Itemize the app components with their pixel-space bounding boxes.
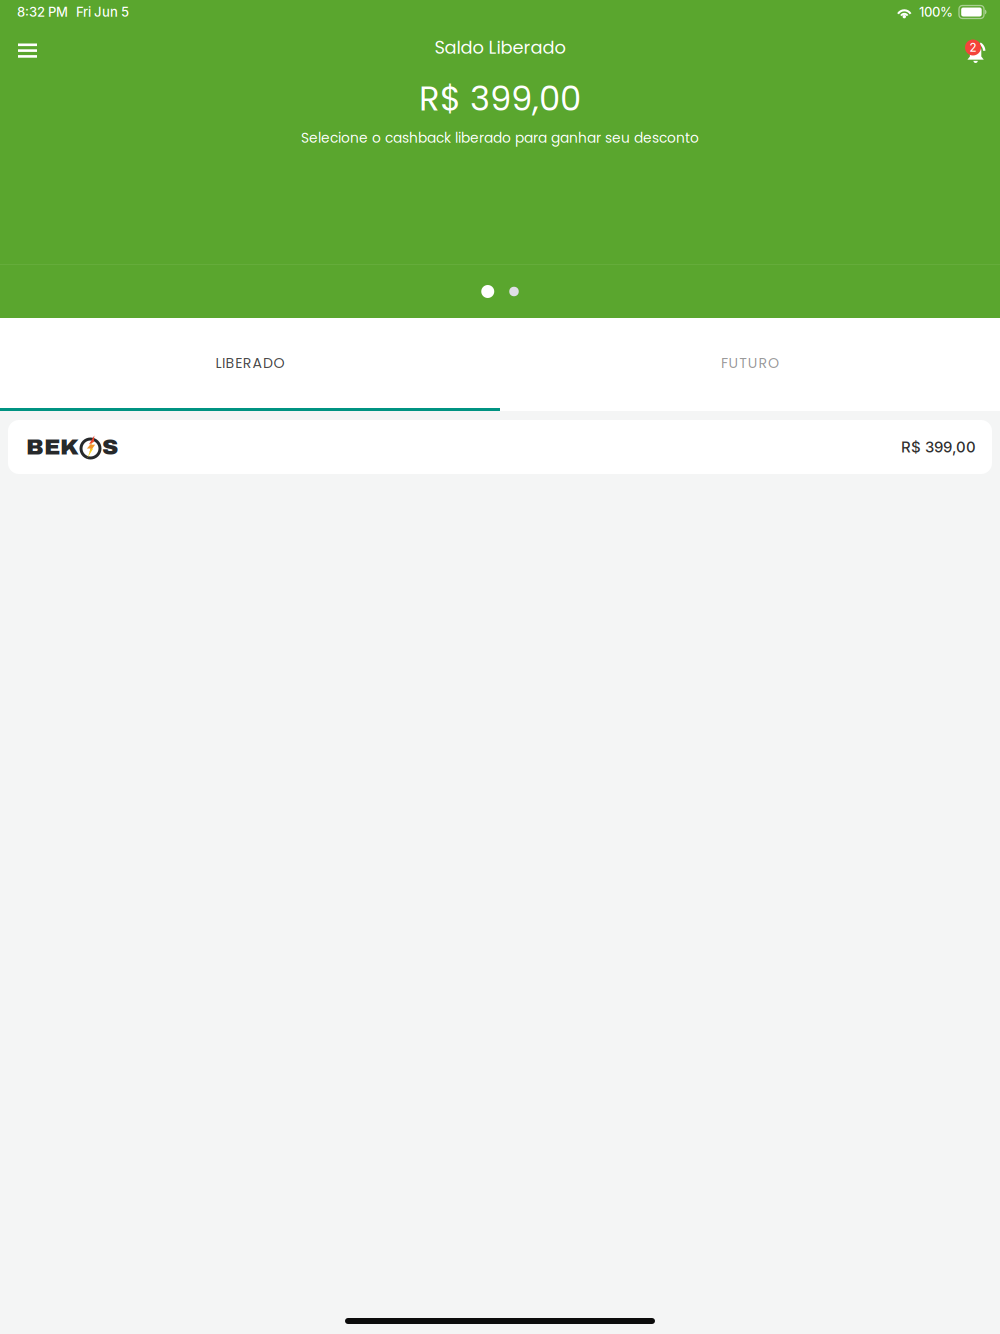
staticText: BEK: [26, 435, 79, 459]
staticText: FUTURO: [721, 353, 779, 373]
staticText: S: [102, 435, 118, 459]
staticText: LIBERADO: [215, 353, 285, 373]
staticText: Saldo Liberado: [434, 35, 565, 60]
staticText: Fri Jun 5: [76, 4, 129, 20]
button[interactable]: Menu: [0, 25, 44, 69]
button[interactable]: LIBERADO: [0, 318, 500, 408]
staticText: 8:32 PM: [17, 4, 68, 20]
staticText: Selecione o cashback liberado para ganha…: [301, 128, 699, 148]
button[interactable]: BEK: [8, 420, 992, 474]
button[interactable]: Notifications: [946, 25, 990, 69]
staticText: R$ 399,00: [901, 438, 976, 456]
staticText: 2: [969, 41, 976, 54]
staticText: 100%: [919, 4, 953, 20]
staticText: R$ 399,00: [419, 75, 581, 122]
button[interactable]: FUTURO: [500, 318, 1000, 408]
